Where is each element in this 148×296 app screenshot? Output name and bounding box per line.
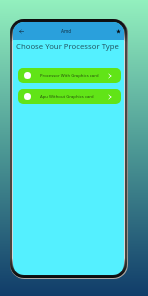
staticText: Apu Without Graphics card — [40, 94, 94, 100]
staticText: Amd — [61, 28, 72, 34]
button[interactable]: Apu Without Graphics card — [18, 89, 121, 104]
staticText: Choose Your Processor Type — [16, 41, 119, 52]
button[interactable]: Processor With Graphics card — [18, 68, 121, 83]
button[interactable]: Back — [15, 23, 28, 40]
staticText: Processor With Graphics card — [40, 73, 99, 79]
button[interactable]: Favorite — [112, 23, 124, 40]
